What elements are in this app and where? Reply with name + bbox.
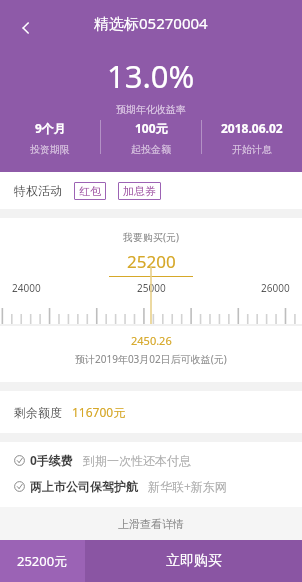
- staticText: 我要购买(元): [123, 230, 179, 244]
- staticText: 开始计息: [232, 143, 272, 156]
- staticText: 0手续费: [30, 452, 73, 468]
- button[interactable]: 25200元: [0, 540, 85, 582]
- staticText: 红包: [79, 184, 101, 198]
- staticText: 26000: [261, 281, 290, 295]
- staticText: 25200元: [17, 552, 68, 570]
- staticText: 100元: [135, 120, 168, 136]
- staticText: 加息券: [123, 184, 156, 198]
- staticText: 新华联+新东网: [148, 478, 227, 494]
- button[interactable]: 上滑查看详情: [0, 507, 302, 540]
- staticText: 预期年化收益率: [116, 103, 186, 116]
- staticText: 116700元: [72, 404, 126, 420]
- staticText: 两上市公司保驾护航: [30, 479, 138, 494]
- button[interactable]: 红包: [74, 182, 106, 200]
- staticText: 精选标05270004: [94, 13, 208, 33]
- staticText: 剩余额度: [14, 405, 62, 420]
- button[interactable]: 立即购买: [85, 540, 302, 582]
- staticText: 2450.26: [131, 333, 172, 348]
- staticText: 9个月: [35, 120, 66, 136]
- staticText: 2018.06.02: [221, 120, 283, 136]
- staticText: 13.0%: [107, 55, 195, 97]
- staticText: 投资期限: [30, 143, 70, 156]
- staticText: 25000: [137, 281, 166, 295]
- button[interactable]: 加息券: [118, 182, 161, 200]
- button[interactable]: Back: [10, 12, 42, 44]
- staticText: 24000: [12, 281, 41, 295]
- staticText: 立即购买: [166, 552, 222, 570]
- staticText: 特权活动: [14, 183, 62, 198]
- staticText: 起投金额: [131, 143, 171, 156]
- staticText: 上滑查看详情: [118, 517, 184, 531]
- staticText: 到期一次性还本付息: [83, 453, 191, 468]
- staticText: 预计2019年03月02日后可收益(元): [75, 352, 227, 366]
- staticText: 25200: [127, 250, 176, 273]
